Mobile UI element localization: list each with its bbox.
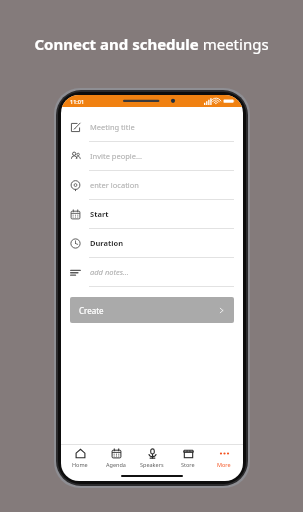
button[interactable]: Invite people... [61, 142, 243, 171]
button[interactable]: Meeting title [61, 113, 243, 142]
button[interactable]: Home [63, 445, 97, 471]
staticText: Start [90, 209, 109, 219]
staticText: More [217, 461, 231, 468]
button[interactable]: Duration [61, 229, 243, 258]
button[interactable]: add notes... [61, 258, 243, 287]
button[interactable]: Agenda [99, 445, 133, 471]
staticText: Duration [90, 238, 124, 248]
staticText: Agenda [106, 461, 126, 468]
button[interactable]: Speakers [135, 445, 169, 471]
staticText: enter location [90, 180, 139, 190]
staticText: add notes... [90, 267, 129, 277]
button[interactable]: Create [70, 297, 234, 323]
staticText: Meeting title [90, 122, 135, 132]
button[interactable]: Start [61, 200, 243, 229]
staticText: Speakers [140, 461, 164, 468]
staticText: 11:01 [70, 98, 85, 105]
button[interactable]: More [207, 445, 241, 471]
staticText: Home [72, 461, 88, 468]
staticText: Create [79, 305, 104, 316]
staticText: Store [181, 461, 195, 468]
staticText: Connect and schedule meetings [34, 34, 269, 54]
button[interactable]: enter location [61, 171, 243, 200]
button[interactable]: Store [171, 445, 205, 471]
staticText: Invite people... [90, 151, 142, 161]
